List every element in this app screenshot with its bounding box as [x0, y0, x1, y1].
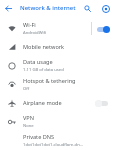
button[interactable]: Data usage: [0, 56, 114, 75]
button[interactable]: Help and feedback: [100, 3, 111, 14]
button[interactable]: Navigate up: [3, 3, 14, 14]
staticText: Off: [23, 86, 30, 92]
staticText: VPN: [23, 114, 34, 122]
staticText: Network & internet: [20, 4, 76, 12]
staticText: AndroidWifi: [23, 30, 47, 36]
staticText: 1dot1dot1dot1.cloudflare-dns.com: [23, 142, 84, 148]
button[interactable]: Private DNS: [0, 131, 114, 150]
button[interactable]: Wi-Fi: [0, 19, 114, 38]
button[interactable]: Airplane mode off: [94, 98, 109, 108]
staticText: Private DNS: [23, 133, 55, 141]
button[interactable]: Airplane mode: [0, 94, 114, 112]
button[interactable]: Mobile network: [0, 38, 114, 56]
staticText: Data usage: [23, 58, 53, 66]
staticText: Mobile network: [23, 43, 65, 51]
staticText: 1.11 GB of data used: [23, 67, 64, 73]
staticText: None: [23, 123, 34, 129]
button[interactable]: VPN: [0, 112, 114, 131]
staticText: Airplane mode: [23, 99, 62, 107]
button[interactable]: Search settings: [82, 3, 93, 14]
staticText: Hotspot & tethering: [23, 77, 76, 85]
button[interactable]: Wi-Fi on: [96, 24, 111, 34]
button[interactable]: Hotspot & tethering: [0, 75, 114, 94]
staticText: Wi-Fi: [23, 21, 36, 29]
